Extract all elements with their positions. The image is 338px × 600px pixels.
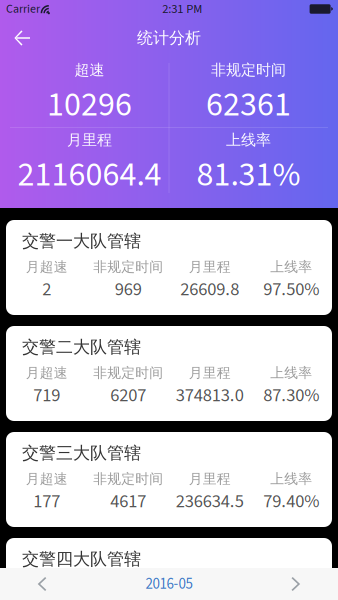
button[interactable]: Previous month — [0, 568, 84, 600]
staticText: 79.40% — [263, 488, 319, 515]
button[interactable]: Next month — [254, 568, 338, 600]
staticText: 236634.5 — [176, 488, 244, 515]
button[interactable]: 交警三大队管辖 — [6, 432, 332, 527]
staticText: 上线率 — [270, 576, 312, 594]
staticText: 月里程 — [67, 131, 112, 149]
button[interactable]: 2016-05 — [145, 568, 192, 600]
staticText: 非规定时间 — [93, 576, 163, 594]
staticText: 2:31 PM — [162, 0, 202, 18]
staticText: 81.31% — [196, 151, 300, 199]
staticText: 上线率 — [270, 258, 312, 276]
staticText: 交警三大队管辖 — [22, 442, 141, 464]
staticText: 月里程 — [189, 258, 231, 276]
staticText: 374813.0 — [176, 382, 244, 409]
staticText: 10296 — [47, 81, 132, 129]
staticText: 2 — [42, 276, 51, 303]
button[interactable]: 交警一大队管辖 — [6, 220, 332, 315]
staticText: 月超速 — [26, 364, 68, 382]
staticText: 6207 — [110, 382, 146, 409]
staticText: 月超速 — [26, 470, 68, 488]
staticText: 87.30% — [263, 382, 319, 409]
staticText: 超速 — [74, 61, 104, 79]
staticText: 非规定时间 — [211, 61, 286, 79]
staticText: 交警二大队管辖 — [22, 336, 141, 358]
staticText: 月超速 — [26, 576, 68, 594]
staticText: 4617 — [110, 488, 146, 515]
staticText: 非规定时间 — [93, 364, 163, 382]
staticText: 非规定时间 — [93, 258, 163, 276]
staticText: 上线率 — [226, 131, 271, 149]
staticText: 969 — [115, 276, 142, 303]
staticText: 719 — [33, 382, 60, 409]
staticText: 交警四大队管辖 — [22, 548, 141, 570]
staticText: 非规定时间 — [93, 470, 163, 488]
staticText: Carrier — [6, 0, 40, 18]
staticText: 统计分析 — [137, 28, 201, 48]
button[interactable]: 交警二大队管辖 — [6, 326, 332, 421]
staticText: 月里程 — [189, 364, 231, 382]
staticText: 上线率 — [270, 470, 312, 488]
button[interactable]: 交警四大队管辖 — [6, 538, 332, 600]
staticText: 177 — [33, 488, 60, 515]
staticText: 上线率 — [270, 364, 312, 382]
staticText: 97.50% — [263, 276, 319, 303]
staticText: 62361 — [206, 81, 291, 129]
staticText: 月里程 — [189, 470, 231, 488]
staticText: 交警一大队管辖 — [22, 230, 141, 252]
staticText: 26609.8 — [180, 276, 239, 303]
staticText: 2116064.4 — [17, 151, 161, 199]
staticText: 月里程 — [189, 576, 231, 594]
staticText: 2016-05 — [145, 573, 192, 595]
button[interactable]: Back — [0, 18, 44, 58]
staticText: 月超速 — [26, 258, 68, 276]
